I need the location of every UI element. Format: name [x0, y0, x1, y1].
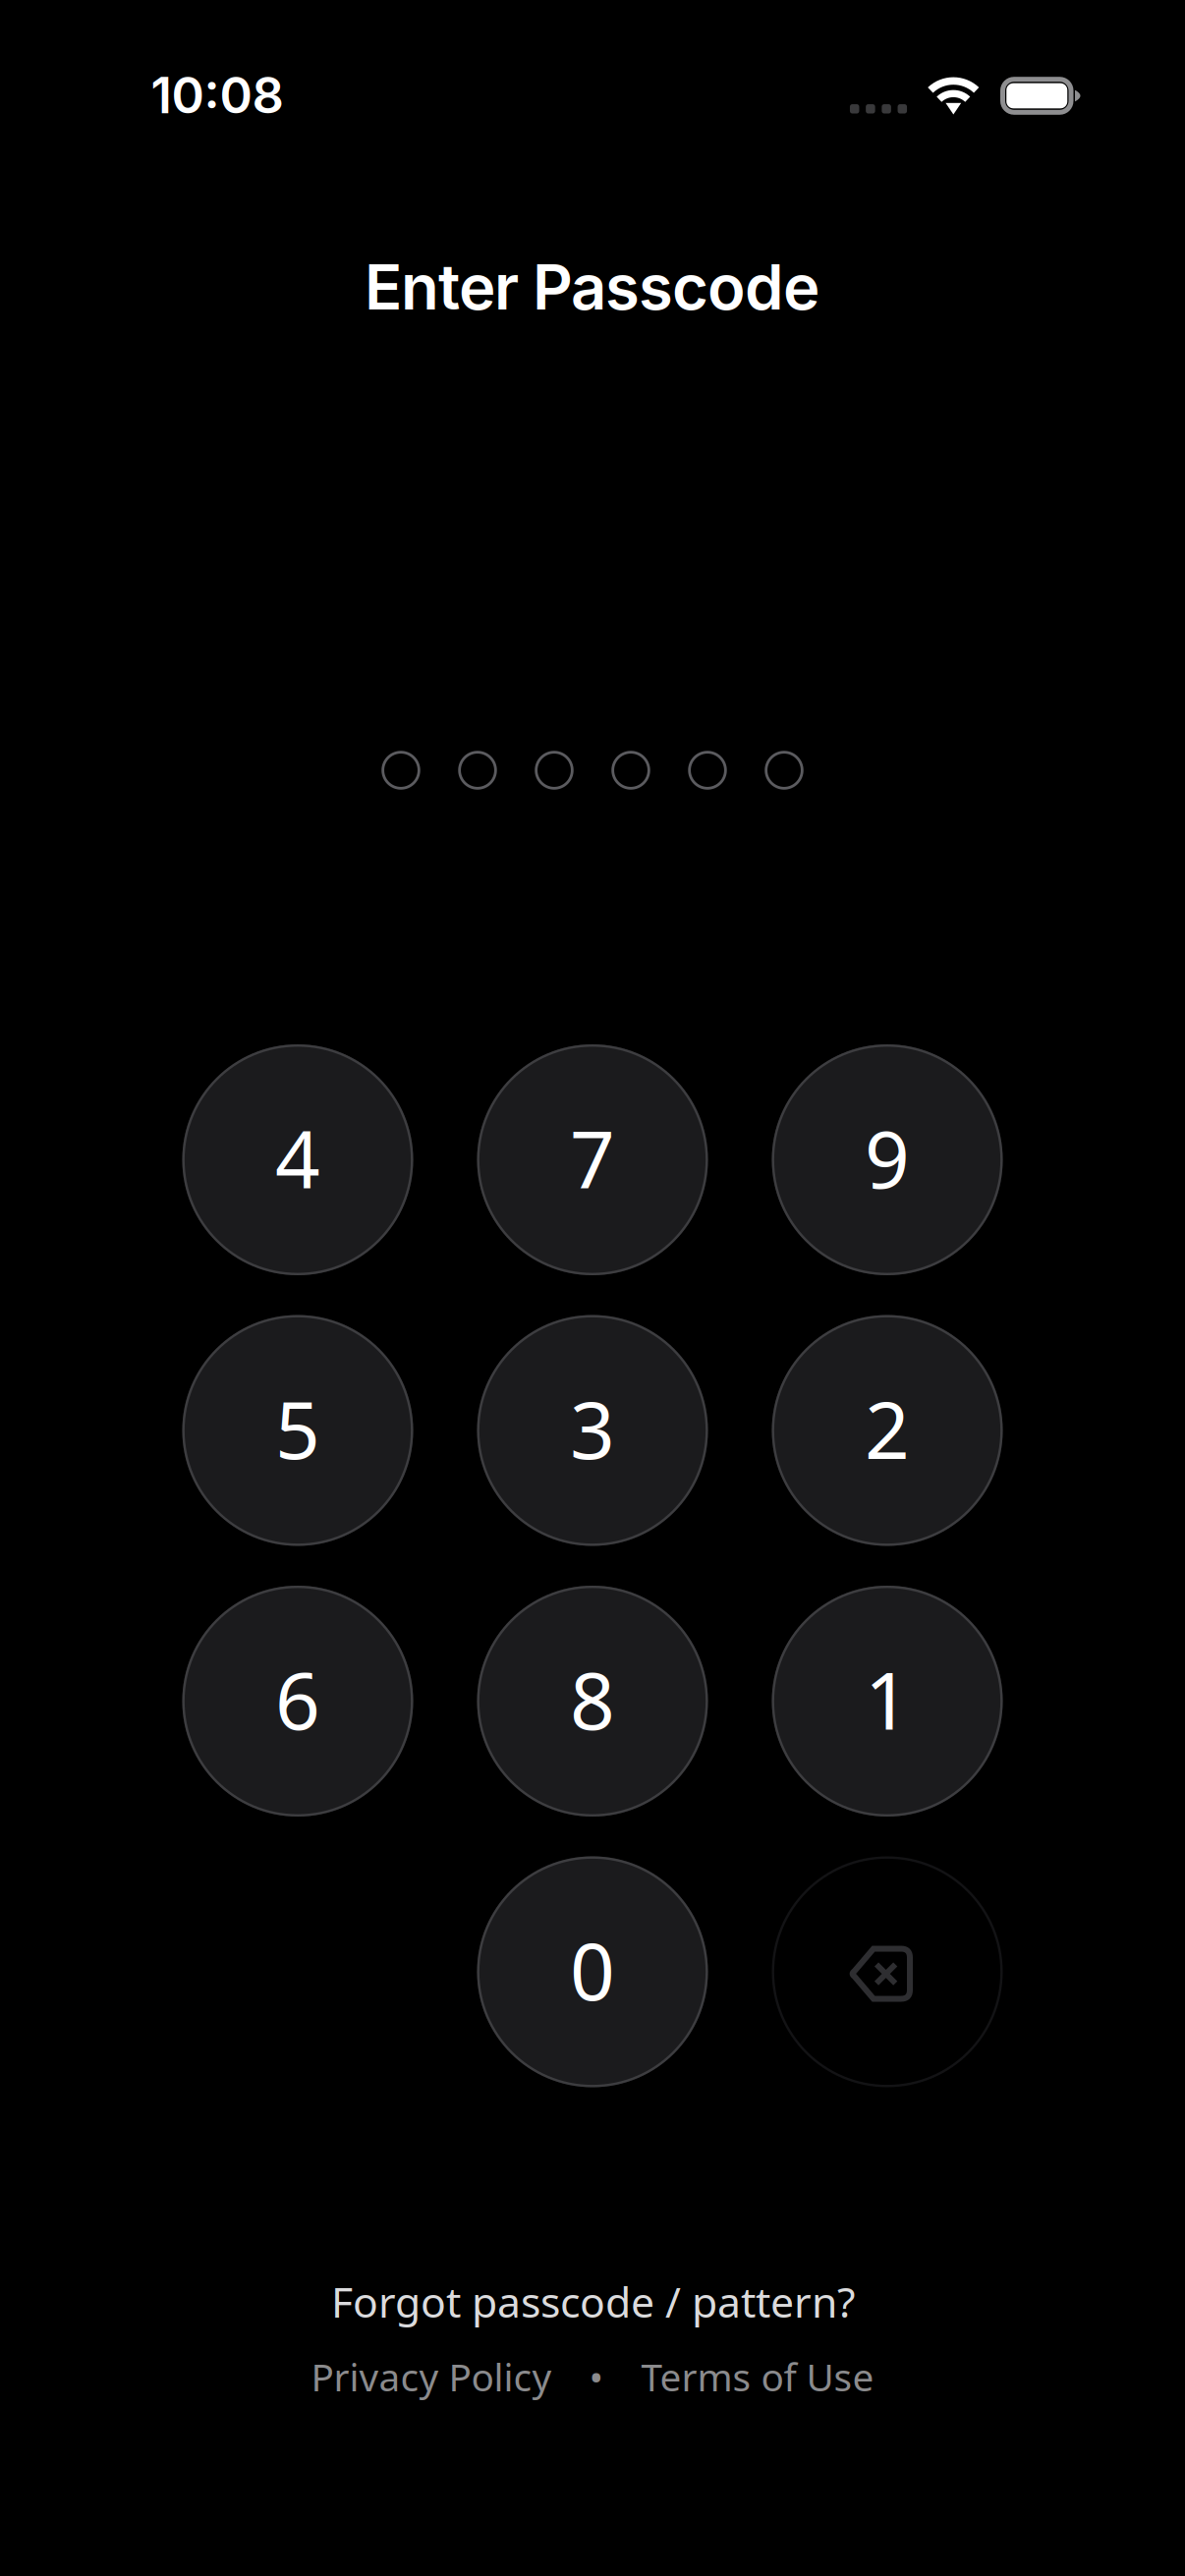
- staticText: 8: [570, 1647, 615, 1751]
- button[interactable]: 7: [477, 1044, 708, 1275]
- button[interactable]: Terms of Use: [641, 2351, 874, 2402]
- staticText: Forgot passcode / pattern?: [331, 2274, 856, 2329]
- button[interactable]: Delete: [772, 1856, 1003, 2087]
- staticText: 2: [865, 1376, 910, 1481]
- staticText: 6: [275, 1647, 320, 1751]
- staticText: 7: [570, 1106, 615, 1210]
- button[interactable]: 4: [182, 1044, 413, 1275]
- staticText: Terms of Use: [641, 2351, 874, 2402]
- button[interactable]: 8: [477, 1586, 708, 1817]
- button[interactable]: Forgot passcode / pattern?: [331, 2274, 856, 2329]
- button[interactable]: 2: [772, 1315, 1003, 1546]
- button[interactable]: Privacy Policy: [311, 2351, 552, 2402]
- staticText: Enter Passcode: [365, 249, 819, 325]
- button[interactable]: 9: [772, 1044, 1003, 1275]
- staticText: 9: [865, 1106, 910, 1210]
- staticText: •: [589, 2351, 604, 2402]
- staticText: 3: [570, 1376, 615, 1481]
- staticText: 10:08: [151, 65, 283, 125]
- staticText: 5: [275, 1376, 320, 1481]
- button[interactable]: 0: [477, 1856, 708, 2087]
- staticText: 1: [865, 1647, 910, 1751]
- button[interactable]: 6: [182, 1586, 413, 1817]
- button[interactable]: 5: [182, 1315, 413, 1546]
- button[interactable]: 1: [772, 1586, 1003, 1817]
- staticText: 4: [275, 1106, 320, 1210]
- staticText: Privacy Policy: [311, 2351, 552, 2402]
- staticText: 0: [570, 1918, 615, 2022]
- button[interactable]: 3: [477, 1315, 708, 1546]
